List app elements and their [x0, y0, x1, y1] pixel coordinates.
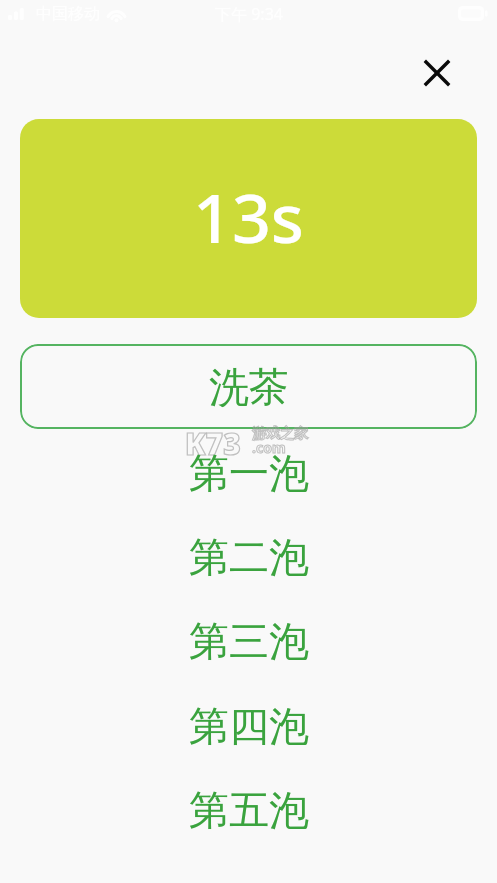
- staticText: 第一泡: [189, 448, 309, 498]
- button[interactable]: 第二泡: [0, 515, 497, 599]
- button[interactable]: 第五泡: [0, 768, 497, 852]
- staticText: 13s: [193, 170, 304, 263]
- button[interactable]: 第一泡: [0, 431, 497, 515]
- button[interactable]: Close: [415, 51, 459, 95]
- button[interactable]: 第四泡: [0, 684, 497, 768]
- button[interactable]: 13s: [20, 119, 477, 318]
- button[interactable]: 第三泡: [0, 599, 497, 683]
- staticText: 第三泡: [189, 616, 309, 666]
- button[interactable]: 洗茶: [20, 344, 477, 429]
- staticText: 游戏之家: [252, 425, 308, 443]
- staticText: .com: [252, 438, 286, 457]
- staticText: 第五泡: [189, 785, 309, 835]
- staticText: K73: [185, 423, 241, 464]
- staticText: 第二泡: [189, 532, 309, 582]
- staticText: 第四泡: [189, 701, 309, 751]
- staticText: 洗茶: [209, 362, 289, 412]
